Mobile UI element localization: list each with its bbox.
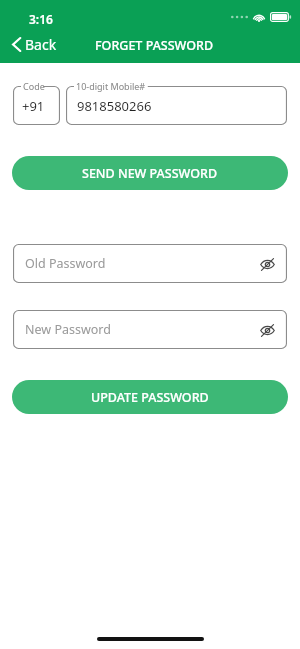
staticText: UPDATE PASSWORD bbox=[91, 389, 209, 406]
staticText: Code bbox=[23, 80, 45, 92]
button[interactable]: Show password bbox=[255, 318, 279, 342]
button[interactable]: SEND NEW PASSWORD bbox=[12, 156, 288, 190]
button[interactable]: 10-digit Mobile# bbox=[66, 86, 287, 125]
staticText: 9818580266 bbox=[77, 97, 152, 115]
staticText: Back bbox=[25, 35, 57, 54]
staticText: New Password bbox=[25, 321, 111, 338]
button[interactable]: Show password bbox=[255, 252, 279, 276]
button[interactable]: UPDATE PASSWORD bbox=[12, 380, 288, 414]
staticText: +91 bbox=[22, 97, 45, 115]
other: Back bbox=[12, 37, 21, 52]
staticText: FORGET PASSWORD bbox=[95, 37, 214, 54]
staticText: Old Password bbox=[25, 255, 106, 272]
button[interactable]: Old Password bbox=[13, 244, 287, 283]
button[interactable]: New Password bbox=[13, 310, 287, 349]
staticText: 10-digit Mobile# bbox=[76, 80, 146, 92]
staticText: 3:16 bbox=[29, 11, 53, 27]
staticText: SEND NEW PASSWORD bbox=[82, 165, 218, 182]
button[interactable]: Code bbox=[13, 86, 60, 125]
button[interactable]: Back bbox=[8, 32, 61, 57]
